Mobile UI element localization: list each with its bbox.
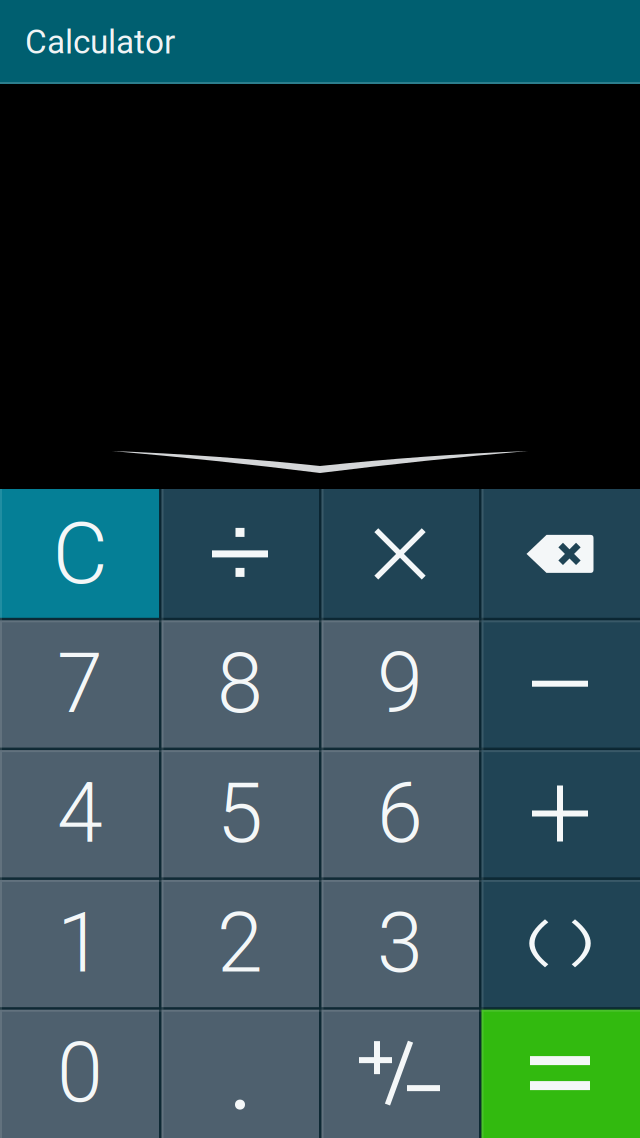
button[interactable]: 3 xyxy=(320,878,480,1008)
staticText: C xyxy=(52,504,107,604)
staticText: 6 xyxy=(377,765,423,862)
staticText: 8 xyxy=(217,635,263,732)
button[interactable]: Minus xyxy=(480,619,640,749)
staticText: Calculator xyxy=(25,22,175,62)
button[interactable]: Parentheses xyxy=(480,878,640,1008)
button[interactable]: Equals xyxy=(480,1008,640,1138)
staticText: 5 xyxy=(217,765,263,862)
staticText: 1 xyxy=(57,895,103,992)
button[interactable]: 7 xyxy=(0,619,160,749)
button[interactable]: C xyxy=(0,489,160,619)
button[interactable]: 9 xyxy=(320,619,480,749)
button[interactable]: Decimal point xyxy=(160,1008,320,1138)
button[interactable]: Calculator xyxy=(25,22,175,62)
button[interactable]: Backspace xyxy=(480,489,640,619)
staticText: 3 xyxy=(377,895,423,992)
button[interactable]: 8 xyxy=(160,619,320,749)
button[interactable]: 5 xyxy=(160,749,320,878)
staticText: 4 xyxy=(57,765,103,862)
button[interactable]: Plus xyxy=(480,749,640,878)
button[interactable]: 2 xyxy=(160,878,320,1008)
staticText: 9 xyxy=(377,635,423,732)
button[interactable]: 4 xyxy=(0,749,160,878)
staticText: 7 xyxy=(57,635,103,732)
button[interactable]: 0 xyxy=(0,1008,160,1138)
button[interactable]: Divide xyxy=(160,489,320,619)
button[interactable]: 1 xyxy=(0,878,160,1008)
staticText: 0 xyxy=(57,1025,103,1122)
button[interactable]: Plus or minus xyxy=(320,1008,480,1138)
staticText: 2 xyxy=(217,895,263,992)
button[interactable]: Multiply xyxy=(320,489,480,619)
button[interactable]: 6 xyxy=(320,749,480,878)
